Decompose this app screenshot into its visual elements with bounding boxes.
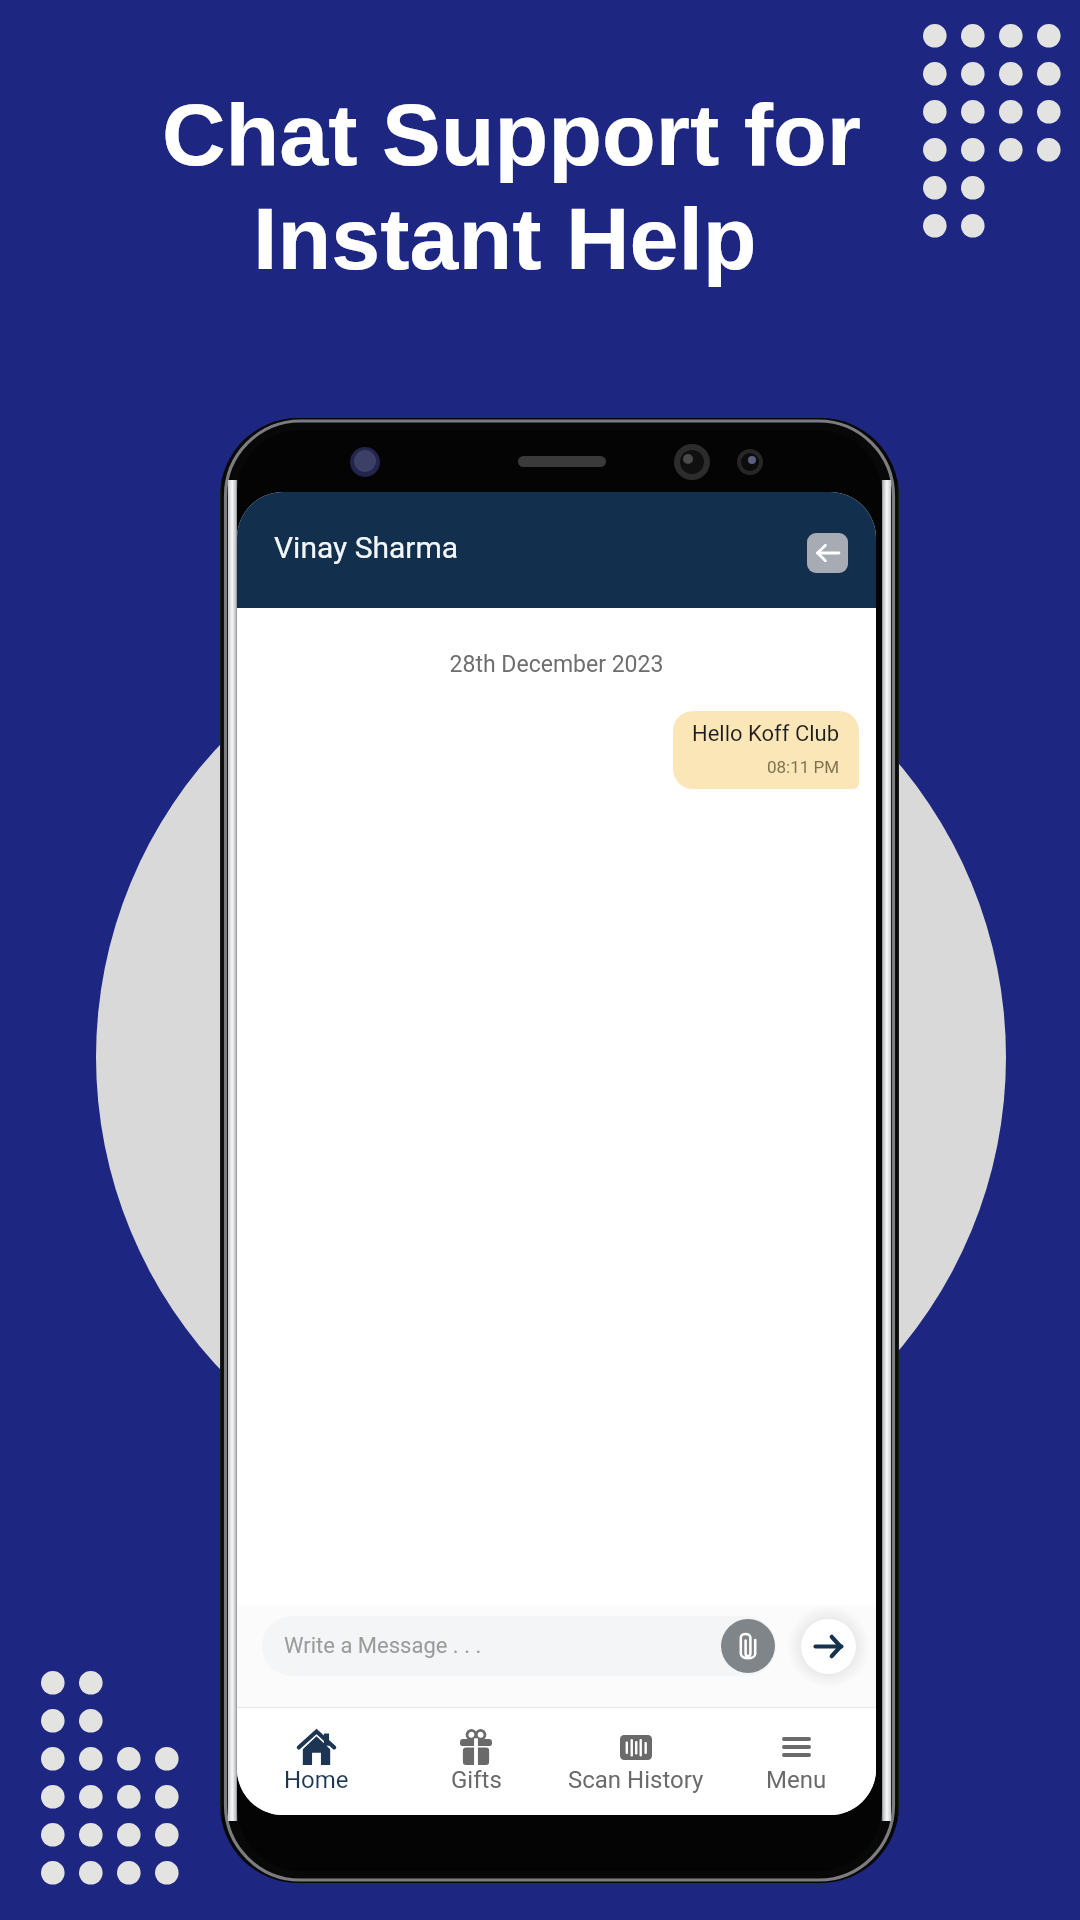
staticText: Gifts	[451, 1766, 502, 1794]
button[interactable]: Send	[801, 1619, 856, 1674]
staticText: Instant Help	[253, 189, 757, 287]
button[interactable]: Back	[807, 533, 848, 573]
staticText: Menu	[766, 1766, 827, 1794]
staticText: Vinay Sharma	[274, 530, 459, 565]
button[interactable]: Write a Message . . .	[262, 1616, 776, 1676]
staticText: 08:11 PM	[767, 757, 840, 777]
staticText: Scan History	[568, 1766, 704, 1794]
staticText: Write a Message . . .	[284, 1633, 482, 1659]
button[interactable]: Gifts	[396, 1708, 556, 1815]
staticText: Hello Koff Club	[692, 721, 840, 747]
staticText: Chat Support for	[162, 85, 862, 183]
button[interactable]: Menu	[716, 1708, 876, 1815]
button[interactable]: Home	[237, 1708, 396, 1815]
button[interactable]: Hello Koff Club	[673, 711, 859, 789]
staticText: 28th December 2023	[237, 651, 876, 678]
staticText: Home	[284, 1766, 349, 1794]
button[interactable]: Scan History	[556, 1708, 716, 1815]
button[interactable]: Attach file	[721, 1619, 775, 1673]
